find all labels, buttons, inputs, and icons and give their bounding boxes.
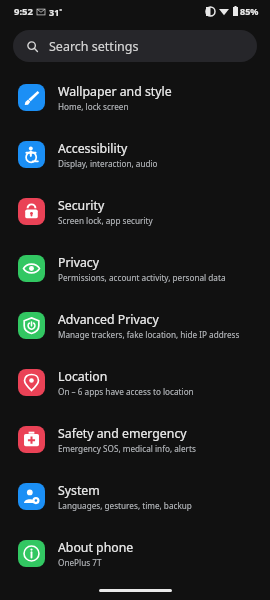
staticText: About phone: [58, 539, 134, 556]
staticText: Security: [58, 197, 105, 214]
button[interactable]: Security: [0, 183, 270, 240]
staticText: Wallpaper and style: [58, 83, 172, 100]
staticText: Advanced Privacy: [58, 311, 159, 328]
button[interactable]: Accessibility: [0, 126, 270, 183]
staticText: Safety and emergency: [58, 425, 187, 442]
button[interactable]: Wallpaper and style: [0, 69, 270, 126]
staticText: Screen lock, app security: [58, 215, 153, 226]
staticText: 85%: [240, 5, 259, 17]
staticText: Privacy: [58, 254, 100, 271]
button[interactable]: Advanced Privacy: [0, 297, 270, 354]
button[interactable]: Location: [0, 354, 270, 411]
staticText: Permissions, account activity, personal …: [58, 272, 226, 283]
staticText: System: [58, 482, 100, 499]
staticText: Location: [58, 368, 108, 385]
staticText: Display, interaction, audio: [58, 158, 158, 169]
button[interactable]: About phone: [0, 525, 270, 582]
button[interactable]: System: [0, 468, 270, 525]
button[interactable]: Privacy: [0, 240, 270, 297]
staticText: 31˚: [49, 6, 63, 18]
staticText: Search settings: [49, 38, 139, 55]
staticText: 9:52: [14, 5, 33, 18]
staticText: Manage trackers, fake location, hide IP …: [58, 329, 240, 340]
staticText: On – 6 apps have access to location: [58, 386, 194, 397]
staticText: OnePlus 7T: [58, 557, 102, 568]
staticText: Languages, gestures, time, backup: [58, 500, 192, 511]
staticText: Home, lock screen: [58, 101, 129, 112]
staticText: Accessibility: [58, 140, 128, 157]
staticText: Emergency SOS, medical info, alerts: [58, 443, 196, 454]
button[interactable]: Search settings: [13, 30, 257, 62]
button[interactable]: Safety and emergency: [0, 411, 270, 468]
